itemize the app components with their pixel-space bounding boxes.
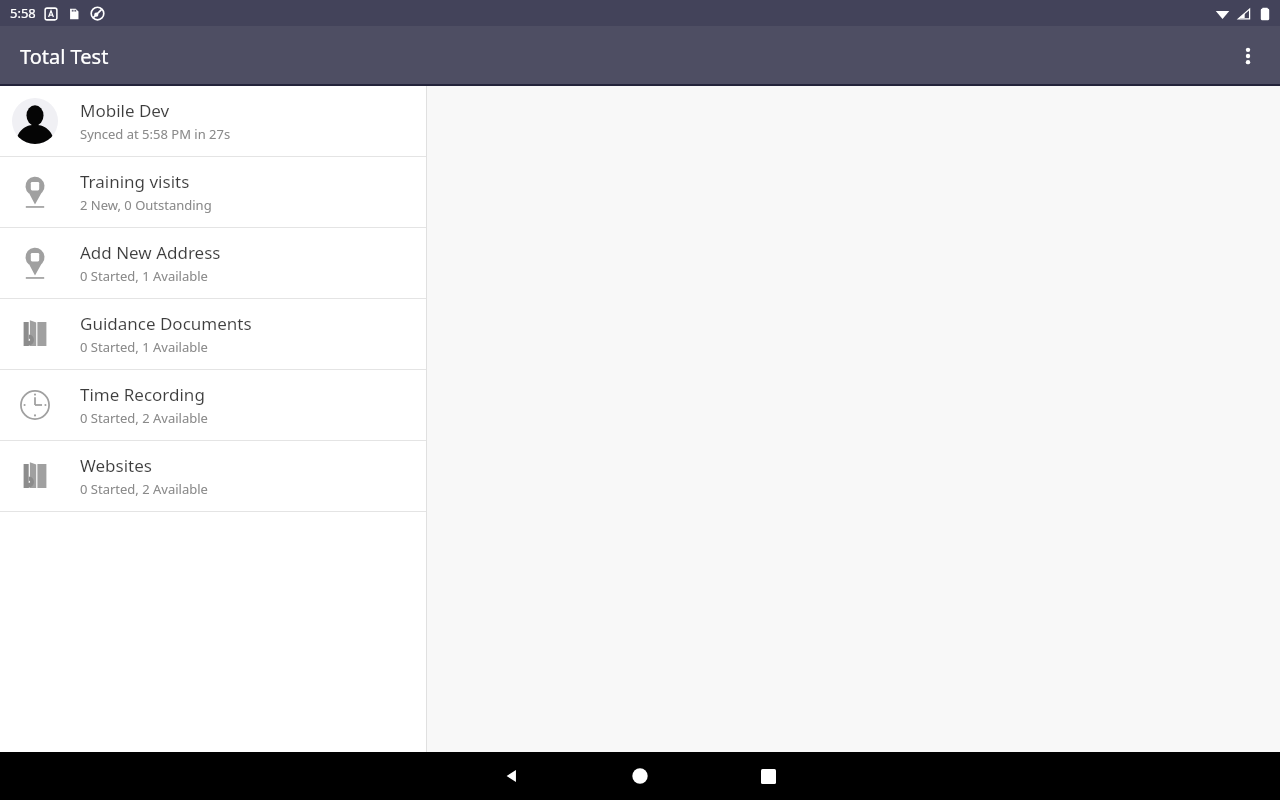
button[interactable]: Guidance Documents: [0, 299, 427, 369]
staticText: Websites: [80, 454, 152, 477]
button[interactable]: Recent apps: [744, 752, 792, 800]
staticText: 0 Started, 1 Available: [80, 267, 208, 285]
staticText: 5:58: [10, 4, 36, 22]
button[interactable]: Time Recording: [0, 370, 427, 440]
staticText: Training visits: [80, 170, 190, 193]
staticText: 2 New, 0 Outstanding: [80, 196, 212, 214]
staticText: Total Test: [20, 43, 109, 70]
staticText: Mobile Dev: [80, 99, 170, 122]
button[interactable]: Back: [488, 752, 536, 800]
button[interactable]: Home: [616, 752, 664, 800]
staticText: Synced at 5:58 PM in 27s: [80, 125, 231, 143]
button[interactable]: Websites: [0, 441, 427, 511]
staticText: 0 Started, 2 Available: [80, 409, 208, 427]
button[interactable]: More options: [1226, 34, 1270, 78]
staticText: 0 Started, 1 Available: [80, 338, 208, 356]
staticText: Time Recording: [80, 383, 205, 406]
staticText: Guidance Documents: [80, 312, 252, 335]
button[interactable]: Add New Address: [0, 228, 427, 298]
button[interactable]: Mobile Dev: [0, 86, 427, 156]
button[interactable]: Training visits: [0, 157, 427, 227]
staticText: Add New Address: [80, 241, 221, 264]
staticText: 0 Started, 2 Available: [80, 480, 208, 498]
